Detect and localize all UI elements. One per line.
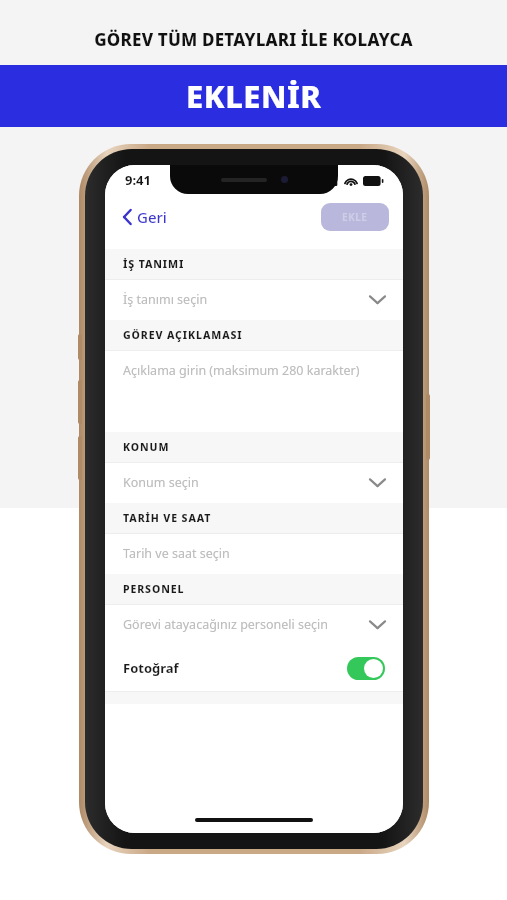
other: Expand [370, 478, 385, 487]
staticText: İş tanımı seçin [123, 291, 208, 308]
staticText: TARİH VE SAAT [123, 511, 212, 525]
button[interactable]: Tarih ve saat seçin [105, 533, 403, 574]
staticText: İŞ TANIMI [123, 257, 185, 271]
staticText: GÖREV AÇIKLAMASI [123, 328, 243, 342]
staticText: Geri [137, 207, 167, 227]
button[interactable]: İş tanımı seçin [105, 279, 403, 320]
staticText: Fotoğraf [123, 659, 179, 677]
staticText: Görevi atayacağınız personeli seçin [123, 616, 329, 633]
staticText: PERSONEL [123, 582, 185, 596]
staticText: EKLE [342, 210, 368, 224]
button[interactable]: Geri [119, 201, 171, 233]
button[interactable]: Fotoğraf [105, 645, 403, 691]
other: Expand [370, 620, 385, 629]
staticText: EKLENİR [186, 75, 322, 117]
button[interactable]: Açıklama girin (maksimum 280 karakter) [105, 350, 403, 432]
staticText: Tarih ve saat seçin [123, 545, 230, 562]
staticText: 9:41 [125, 171, 151, 189]
staticText: Açıklama girin (maksimum 280 karakter) [123, 362, 360, 379]
staticText: KONUM [123, 440, 170, 454]
other: Expand [370, 295, 385, 304]
button[interactable]: EKLE [321, 203, 389, 231]
staticText: Konum seçin [123, 474, 199, 491]
button[interactable]: Konum seçin [105, 462, 403, 503]
button[interactable]: Görevi atayacağınız personeli seçin [105, 604, 403, 645]
staticText: GÖREV TÜM DETAYLARI İLE KOLAYCA [0, 28, 507, 51]
